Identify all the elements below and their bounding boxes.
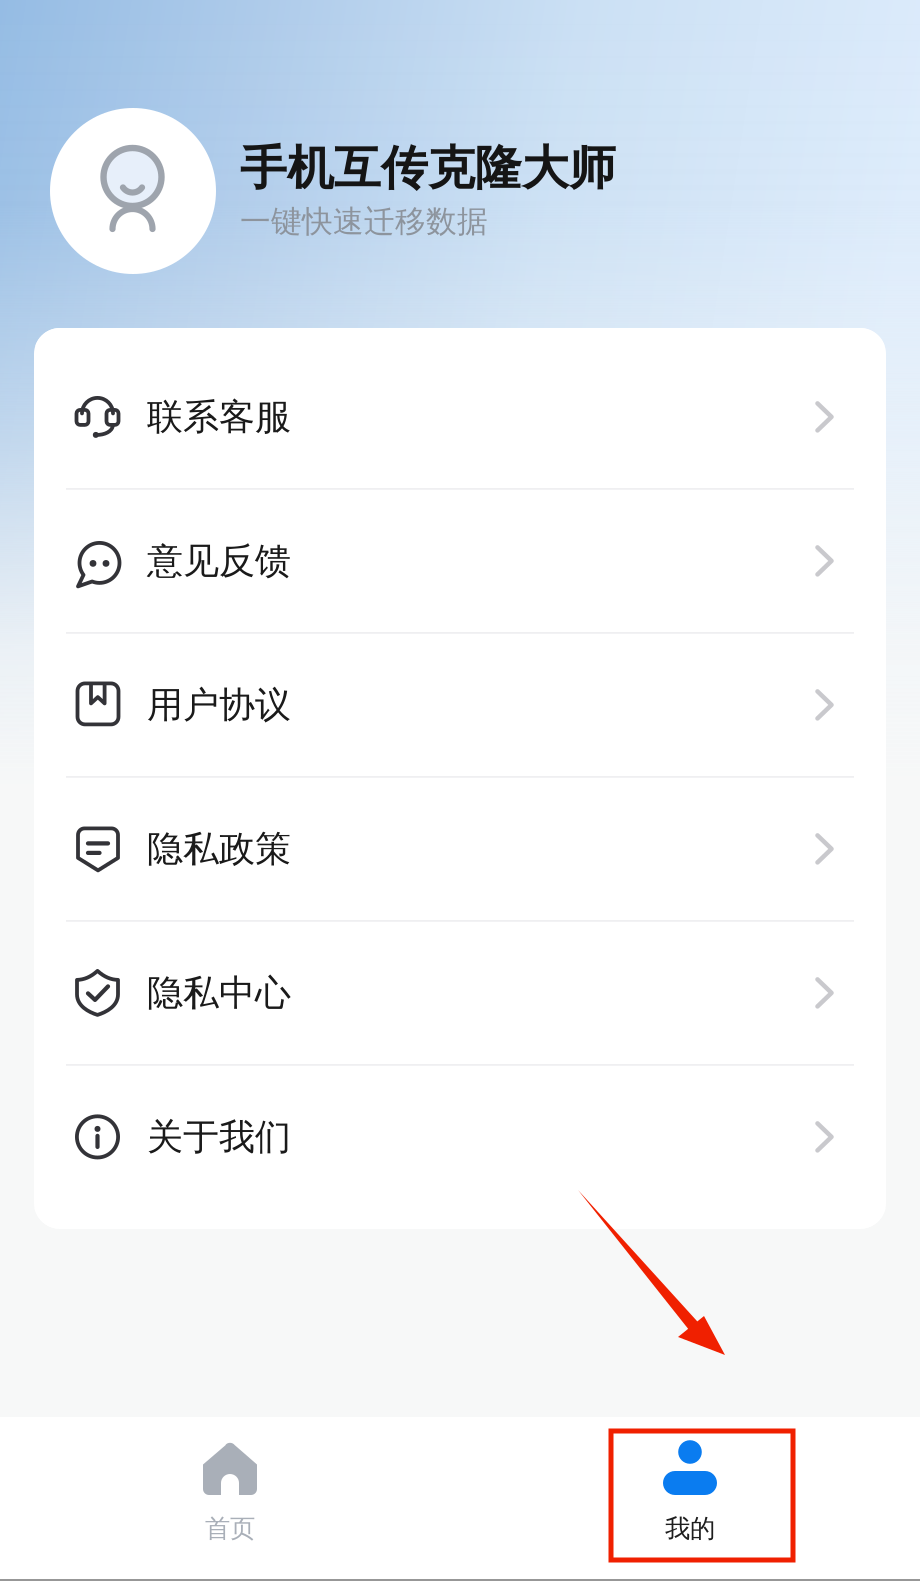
button[interactable]: 我的 [460, 1417, 920, 1579]
staticText: 首页 [205, 1513, 255, 1544]
staticText: 手机互传克隆大师 [240, 139, 616, 197]
button[interactable]: 联系客服 [34, 346, 886, 488]
button[interactable]: 意见反馈 [34, 490, 886, 632]
staticText: 用户协议 [147, 683, 291, 727]
button[interactable]: 隐私政策 [34, 778, 886, 920]
staticText: 意见反馈 [147, 539, 291, 583]
staticText: 联系客服 [147, 395, 291, 439]
button[interactable]: 关于我们 [34, 1066, 886, 1208]
staticText: 我的 [665, 1513, 715, 1544]
button[interactable]: 隐私中心 [34, 922, 886, 1064]
staticText: 一键快速迁移数据 [240, 203, 488, 240]
staticText: 关于我们 [147, 1115, 291, 1159]
button[interactable]: 用户协议 [34, 634, 886, 776]
staticText: 隐私中心 [147, 971, 291, 1015]
staticText: 隐私政策 [147, 827, 291, 871]
button[interactable]: 首页 [0, 1417, 460, 1579]
